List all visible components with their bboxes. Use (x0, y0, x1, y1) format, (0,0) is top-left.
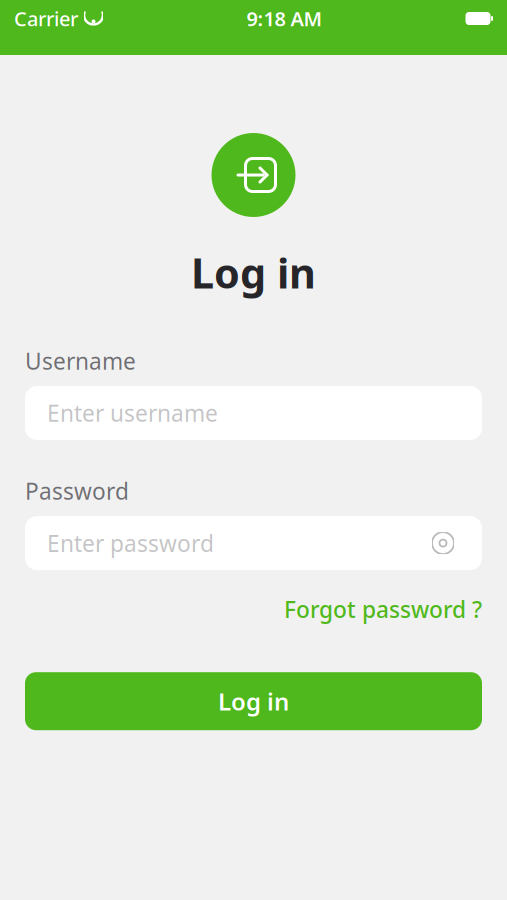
staticText: 9:18 AM (246, 5, 322, 32)
staticText: Log in (191, 245, 316, 300)
staticText: Username (25, 346, 136, 376)
staticText: Forgot password ? (284, 594, 482, 624)
staticText: Carrier (14, 5, 78, 32)
staticText: Password (25, 476, 129, 506)
button[interactable]: Log in (25, 672, 482, 730)
staticText: Log in (218, 685, 289, 717)
button[interactable]: Show password (426, 526, 460, 560)
staticText: Enter password (47, 528, 214, 558)
button[interactable]: Forgot password ? (284, 588, 482, 630)
staticText: Enter username (47, 398, 218, 428)
